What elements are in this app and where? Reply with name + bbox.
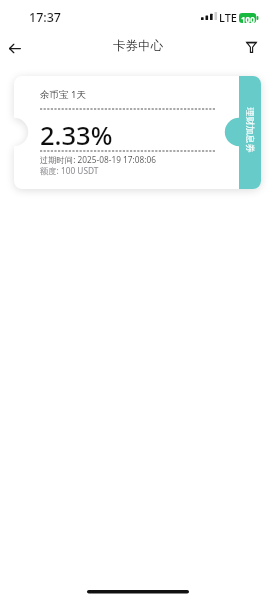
staticText: 2.33%	[40, 118, 113, 153]
staticText: 100	[241, 14, 255, 25]
staticText: 卡券中心	[113, 38, 163, 54]
staticText: 17:37	[29, 9, 62, 26]
button[interactable]: Back	[0, 32, 31, 64]
button[interactable]: Filter	[235, 31, 267, 63]
staticText: LTE	[219, 10, 237, 25]
button[interactable]: 余币宝 1天	[0, 0, 276, 600]
staticText: 理财加息券	[244, 107, 255, 152]
staticText: 余币宝 1天	[40, 88, 86, 101]
staticText: 过期时间: 2025-08-19 17:08:06	[40, 154, 156, 165]
staticText: 额度: 100 USDT	[40, 165, 99, 176]
